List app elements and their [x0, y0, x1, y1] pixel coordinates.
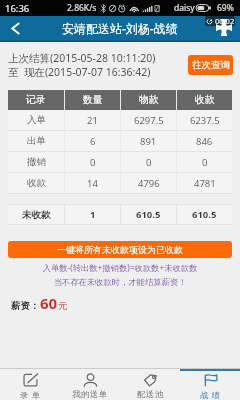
button[interactable]: 录 单 — [0, 369, 60, 400]
staticText: 21 — [87, 114, 98, 127]
staticText: 薪资： — [11, 300, 40, 312]
button[interactable]: 往次查询 — [188, 55, 233, 75]
staticText: 1 — [90, 208, 96, 221]
staticText: daisy — [174, 2, 195, 14]
staticText: 记录 — [26, 94, 46, 106]
staticText: 撤销 — [27, 156, 46, 168]
button[interactable]: 配送池 — [120, 369, 180, 400]
staticText: 6 — [90, 135, 96, 148]
staticText: 入单 — [27, 114, 46, 126]
staticText: 入单数-(转出数+撤销数)=收款数+未收款数 — [0, 262, 240, 273]
staticText: 0 — [202, 156, 208, 169]
staticText: 当不存在未收款时，才能结算薪资！ — [0, 277, 240, 287]
staticText: 60 — [40, 293, 58, 313]
staticText: 16:36 — [5, 2, 30, 15]
staticText: 4796 — [138, 177, 160, 190]
staticText: 一键将所有未收款项设为已收款 — [57, 244, 183, 255]
staticText: 录 单 — [20, 389, 41, 400]
button[interactable]: 战 绩 — [180, 369, 240, 400]
staticText: 891 — [140, 135, 157, 148]
staticText: 元 — [58, 300, 68, 312]
staticText: 846 — [196, 135, 213, 148]
button[interactable]: 我的送单 — [60, 369, 120, 400]
staticText: 00:02 — [215, 16, 235, 26]
staticText: 至 现在(2015-07-07 16:36:42) — [8, 65, 151, 79]
staticText: 安靖配送站-刘杨-战绩 — [62, 20, 178, 36]
staticText: 上次结算(2015-05-28 10:11:20) — [8, 51, 156, 65]
staticText: 收款 — [27, 177, 46, 189]
staticText: 我的送单 — [72, 389, 108, 399]
staticText: 收款 — [195, 94, 215, 106]
staticText: 4781 — [194, 177, 216, 190]
staticText: 出单 — [27, 135, 46, 147]
staticText: 往次查询 — [192, 59, 230, 71]
staticText: 14 — [87, 177, 98, 190]
staticText: 2.86K/s — [67, 2, 97, 14]
staticText: 6237.5 — [190, 114, 220, 127]
staticText: 配送池 — [137, 389, 164, 399]
staticText: 610.5 — [192, 208, 217, 221]
staticText: 69% — [217, 2, 234, 14]
staticText: 0 — [146, 156, 152, 169]
staticText: 6297.5 — [134, 114, 164, 127]
staticText: 0 — [90, 156, 96, 169]
staticText: 物款 — [139, 94, 159, 106]
staticText: 610.5 — [136, 208, 161, 221]
staticText: 数量 — [83, 94, 103, 106]
button[interactable]: 一键将所有未收款项设为已收款 — [8, 241, 232, 258]
staticText: 战 绩 — [200, 389, 221, 400]
staticText: 未收款 — [22, 209, 51, 221]
button[interactable]: Back — [0, 16, 30, 40]
